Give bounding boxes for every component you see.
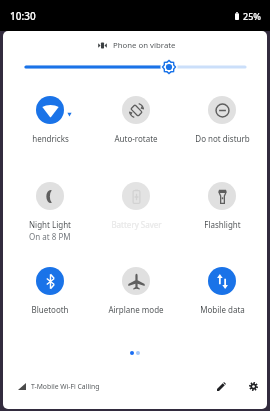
button[interactable]: Mobile data: [179, 267, 265, 329]
staticText: Phone on vibrate: [113, 40, 176, 51]
staticText: hendricks: [32, 133, 69, 144]
staticText: 25%: [243, 10, 261, 22]
staticText: 10:30: [10, 9, 36, 23]
staticText: T-Mobile Wi-Fi Calling: [31, 382, 100, 391]
staticText: Do not disturb: [195, 133, 250, 144]
staticText: Airplane mode: [108, 304, 164, 315]
button[interactable]: Battery Saver: [93, 182, 179, 244]
button[interactable]: Auto-rotate: [93, 96, 179, 158]
button[interactable]: hendricks: [7, 96, 93, 158]
staticText: Mobile data: [200, 304, 245, 315]
staticText: On at 8 PM: [29, 231, 71, 242]
staticText: Flashlight: [204, 219, 241, 230]
button[interactable]: Night Light: [7, 182, 93, 244]
staticText: Night Light: [29, 219, 71, 230]
button[interactable]: Edit: [210, 375, 232, 397]
button[interactable]: Settings: [242, 375, 264, 397]
staticText: Auto-rotate: [114, 133, 158, 144]
button[interactable]: Do not disturb: [179, 96, 265, 158]
staticText: Battery Saver: [111, 219, 162, 230]
button[interactable]: Airplane mode: [93, 267, 179, 329]
button[interactable]: Brightness: [3, 57, 267, 77]
button[interactable]: Bluetooth: [7, 267, 93, 329]
button[interactable]: Flashlight: [179, 182, 265, 244]
staticText: Bluetooth: [31, 304, 69, 315]
